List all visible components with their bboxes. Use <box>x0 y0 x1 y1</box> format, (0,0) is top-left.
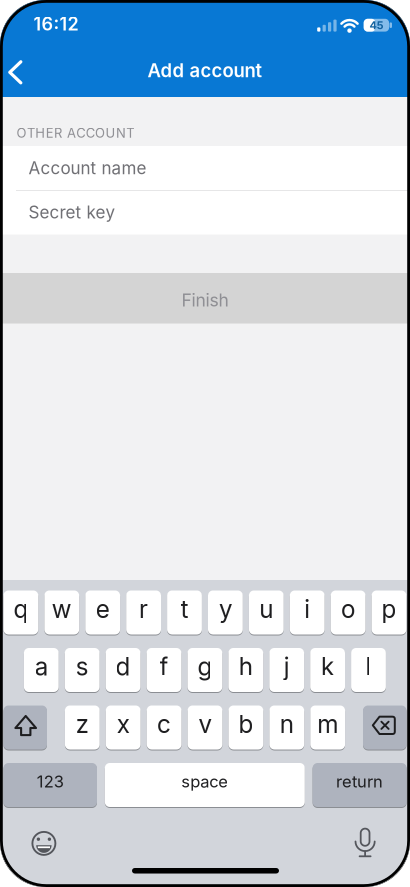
staticText: u <box>259 594 273 624</box>
staticText: a <box>35 652 48 681</box>
staticText: m <box>317 709 338 739</box>
staticText: c <box>157 709 171 739</box>
button[interactable]: w <box>44 590 79 635</box>
button[interactable]: c <box>147 705 181 750</box>
button[interactable]: d <box>106 647 140 692</box>
button[interactable]: u <box>249 590 284 635</box>
button[interactable]: s <box>65 647 100 692</box>
staticText: space <box>181 771 228 791</box>
button[interactable]: i <box>290 590 325 635</box>
button[interactable]: p <box>372 590 406 635</box>
staticText: h <box>239 652 253 681</box>
button[interactable]: a <box>24 647 59 692</box>
staticText: return <box>336 771 383 791</box>
button[interactable]: Delete <box>363 705 406 750</box>
button[interactable]: Secret key <box>0 0 381 44</box>
staticText: Secret key <box>28 202 115 223</box>
staticText: p <box>381 594 396 624</box>
staticText: z <box>76 709 89 739</box>
button[interactable]: x <box>106 705 141 750</box>
staticText: 45 <box>369 18 383 32</box>
staticText: s <box>76 652 89 681</box>
staticText: t <box>180 594 188 624</box>
button[interactable]: q <box>3 590 38 635</box>
staticText: r <box>139 594 148 624</box>
button[interactable]: f <box>147 647 181 692</box>
staticText: OTHER ACCOUNT <box>16 125 134 141</box>
button[interactable]: Finish <box>0 0 410 50</box>
staticText: Finish <box>181 290 228 311</box>
button[interactable]: Account name <box>0 0 381 44</box>
button[interactable]: Dictate <box>350 824 380 860</box>
button[interactable]: Shift <box>3 705 47 750</box>
staticText: q <box>13 594 28 624</box>
button[interactable]: j <box>269 647 304 692</box>
button[interactable]: Emoji <box>22 821 66 865</box>
staticText: x <box>117 709 130 739</box>
staticText: i <box>304 594 310 624</box>
button[interactable]: l <box>351 647 386 692</box>
button[interactable]: m <box>310 705 345 750</box>
staticText: v <box>198 709 211 739</box>
staticText: j <box>284 652 290 681</box>
button[interactable]: 123 <box>3 762 97 807</box>
staticText: y <box>219 594 232 624</box>
staticText: g <box>197 652 212 681</box>
staticText: f <box>159 652 168 681</box>
button[interactable]: g <box>187 647 222 692</box>
button[interactable]: t <box>167 590 202 635</box>
button[interactable]: Back <box>0 0 30 30</box>
staticText: n <box>280 709 294 739</box>
button[interactable]: b <box>228 705 263 750</box>
staticText: w <box>52 594 72 624</box>
button[interactable]: r <box>126 590 161 635</box>
button[interactable]: z <box>65 705 100 750</box>
button[interactable]: o <box>331 590 365 635</box>
button[interactable]: k <box>310 647 345 692</box>
button[interactable]: h <box>228 647 263 692</box>
staticText: o <box>341 594 355 624</box>
staticText: e <box>96 594 110 624</box>
staticText: l <box>365 652 371 681</box>
staticText: 16:12 <box>33 13 78 35</box>
staticText: Add account <box>147 59 262 82</box>
staticText: b <box>238 709 253 739</box>
button[interactable]: e <box>85 590 120 635</box>
staticText: d <box>116 652 131 681</box>
button[interactable]: y <box>208 590 243 635</box>
button[interactable]: v <box>188 705 222 750</box>
staticText: Account name <box>28 158 146 178</box>
staticText: k <box>321 652 334 681</box>
button[interactable]: n <box>269 705 304 750</box>
button[interactable]: return <box>313 762 407 807</box>
staticText: 123 <box>37 771 64 791</box>
button[interactable]: space <box>105 762 305 807</box>
